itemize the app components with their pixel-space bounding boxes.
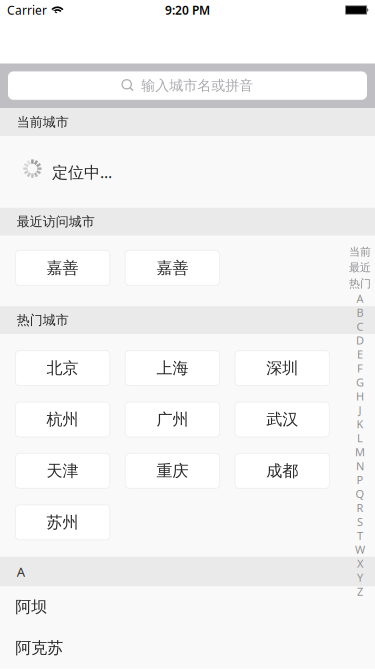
staticText: 热门 [349,277,371,290]
staticText: F [357,361,363,376]
staticText: L [357,430,363,445]
button[interactable]: 阿坝 [0,586,375,627]
staticText: C [356,319,363,334]
staticText: G [356,375,364,390]
staticText: 重庆 [156,461,188,481]
staticText: 当前城市 [17,114,69,130]
button[interactable]: 苏州 [15,505,110,540]
button[interactable]: 嘉善 [15,250,110,285]
button[interactable]: City index [348,244,372,598]
staticText: 广州 [156,409,188,430]
staticText: T [357,528,363,543]
staticText: 上海 [156,358,188,378]
button[interactable]: 杭州 [15,402,110,437]
staticText: 热门城市 [17,312,69,328]
staticText: Y [357,570,363,585]
staticText: Q [355,486,364,501]
staticText: 当前 [349,245,371,259]
button[interactable]: 成都 [235,453,329,488]
staticText: 输入城市名或拼音 [141,77,253,94]
button[interactable]: 广州 [125,402,220,437]
staticText: Carrier [7,2,47,18]
staticText: 9:20 PM [165,2,210,18]
staticText: K [356,416,363,431]
button[interactable]: 天津 [15,453,110,488]
button[interactable]: 武汉 [235,402,329,437]
staticText: Z [357,584,363,599]
button[interactable]: 阿克苏 [0,627,375,668]
staticText: 嘉善 [156,258,188,278]
staticText: M [355,444,365,459]
staticText: 成都 [266,461,298,481]
button[interactable]: 重庆 [125,453,220,488]
button[interactable]: 上海 [125,351,220,386]
staticText: E [357,347,363,362]
staticText: 天津 [47,461,79,481]
staticText: A [356,291,363,306]
button[interactable]: 嘉善 [125,250,220,285]
staticText: 最近访问城市 [17,214,95,230]
staticText: 苏州 [47,512,79,532]
button[interactable]: 深圳 [235,351,329,386]
staticText: 杭州 [47,409,79,430]
button[interactable]: 定位中... [0,136,375,208]
button[interactable]: 输入城市名或拼音 [0,63,375,108]
staticText: 武汉 [266,409,298,430]
staticText: P [356,472,363,487]
staticText: S [357,514,363,529]
staticText: 定位中... [52,161,112,183]
staticText: J [358,403,361,418]
staticText: H [356,389,364,404]
staticText: W [355,542,365,557]
button[interactable]: 北京 [15,351,110,386]
staticText: 最近 [349,261,371,275]
staticText: 阿坝 [15,597,47,617]
staticText: A [17,563,25,580]
staticText: 嘉善 [47,258,79,278]
staticText: D [356,333,364,348]
staticText: 阿克苏 [15,638,63,658]
staticText: B [356,305,363,320]
staticText: N [356,458,364,473]
staticText: 深圳 [266,358,298,378]
staticText: R [356,500,363,515]
staticText: X [357,556,363,571]
staticText: 北京 [47,358,79,378]
